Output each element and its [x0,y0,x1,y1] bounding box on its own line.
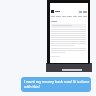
staticText: with this! [24,84,40,89]
button[interactable]: I want my money back now! It is done [21,77,91,92]
staticText: I want my money back now! It is done [24,79,90,84]
